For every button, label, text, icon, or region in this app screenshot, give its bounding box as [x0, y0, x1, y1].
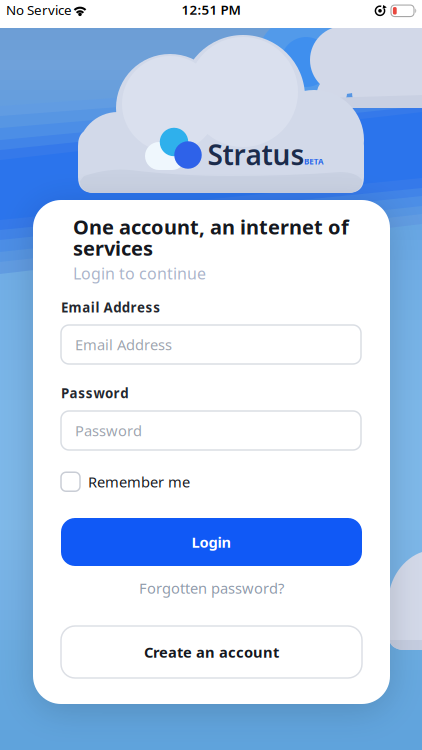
staticText: Password: [61, 384, 128, 402]
staticText: services: [73, 235, 153, 261]
staticText: 12:51 PM: [181, 1, 240, 18]
staticText: Stratus: [207, 136, 304, 173]
staticText: Remember me: [88, 472, 190, 491]
staticText: Forgotten password?: [139, 578, 284, 598]
staticText: One account, an internet of: [73, 213, 349, 240]
staticText: Login: [191, 532, 231, 552]
staticText: Create an account: [144, 642, 279, 662]
button[interactable]: Remember me: [61, 472, 190, 491]
button[interactable]: Login: [61, 518, 362, 566]
button[interactable]: Create an account: [61, 626, 362, 678]
staticText: No Service: [6, 1, 72, 19]
button[interactable]: Password: [61, 411, 361, 450]
staticText: Login to continue: [73, 263, 206, 284]
staticText: BETA: [304, 156, 324, 167]
button[interactable]: Forgotten password?: [139, 578, 284, 598]
button[interactable]: Email Address: [61, 325, 361, 364]
staticText: Email Address: [61, 298, 160, 316]
staticText: Password: [75, 421, 142, 440]
staticText: Email Address: [75, 335, 172, 354]
